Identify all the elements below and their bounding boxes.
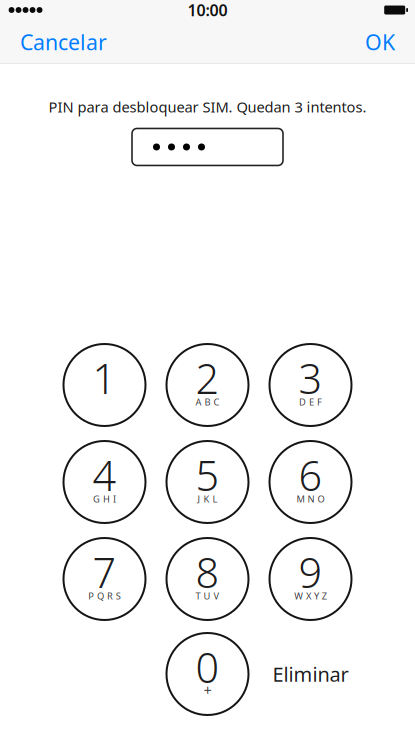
staticText: W bbox=[294, 590, 303, 602]
button[interactable]: Cancelar bbox=[16, 22, 111, 62]
staticText: 2 bbox=[195, 351, 219, 405]
staticText: A bbox=[196, 396, 202, 408]
staticText: Y bbox=[314, 590, 319, 602]
staticText: H bbox=[103, 493, 110, 505]
staticText: 7 bbox=[92, 545, 116, 599]
staticText: Q bbox=[97, 590, 104, 602]
staticText: 8 bbox=[195, 545, 219, 599]
staticText: C bbox=[213, 396, 219, 408]
button[interactable]: 9 bbox=[269, 538, 351, 620]
staticText: 3 bbox=[298, 351, 322, 405]
staticText: S bbox=[116, 590, 121, 602]
staticText: I bbox=[113, 493, 116, 505]
staticText: 5 bbox=[195, 448, 219, 502]
staticText: F bbox=[317, 396, 322, 408]
button[interactable]: 8 bbox=[166, 538, 248, 620]
staticText: + bbox=[203, 680, 211, 700]
staticText: 6 bbox=[298, 448, 322, 502]
staticText: PIN para desbloquear SIM. Quedan 3 inten… bbox=[48, 97, 366, 116]
button[interactable]: 5 bbox=[166, 441, 248, 523]
button[interactable]: 1 bbox=[63, 344, 145, 426]
staticText: J bbox=[198, 493, 201, 505]
button[interactable]: OK bbox=[361, 22, 399, 62]
staticText: N bbox=[307, 493, 314, 505]
staticText: T bbox=[196, 590, 201, 602]
staticText: 4 bbox=[92, 448, 116, 502]
staticText: D bbox=[299, 396, 306, 408]
staticText: B bbox=[204, 396, 210, 408]
staticText: L bbox=[212, 493, 217, 505]
staticText: V bbox=[213, 590, 219, 602]
button[interactable]: 4 bbox=[63, 441, 145, 523]
staticText: P bbox=[88, 590, 94, 602]
staticText: Eliminar bbox=[272, 661, 348, 687]
staticText: R bbox=[107, 590, 113, 602]
staticText: 9 bbox=[298, 545, 322, 599]
staticText: X bbox=[306, 590, 311, 602]
button[interactable]: 6 bbox=[269, 441, 351, 523]
staticText: 0 bbox=[195, 640, 219, 694]
staticText: U bbox=[203, 590, 210, 602]
staticText: Cancelar bbox=[20, 28, 107, 56]
button[interactable]: 0 bbox=[166, 633, 248, 715]
staticText: 10:00 bbox=[187, 0, 227, 21]
button[interactable]: 7 bbox=[63, 538, 145, 620]
staticText: G bbox=[93, 493, 100, 505]
button[interactable]: 2 bbox=[166, 344, 248, 426]
button[interactable]: 3 bbox=[269, 344, 351, 426]
button[interactable]: Eliminar bbox=[269, 633, 351, 715]
staticText: E bbox=[309, 396, 314, 408]
staticText: O bbox=[317, 493, 324, 505]
staticText: M bbox=[297, 493, 305, 505]
staticText: 1 bbox=[92, 351, 116, 405]
staticText: K bbox=[203, 493, 209, 505]
button[interactable]: Campo de PIN, 4 dígitos introducidos bbox=[132, 128, 283, 165]
staticText: Z bbox=[322, 590, 327, 602]
staticText: OK bbox=[365, 28, 395, 56]
